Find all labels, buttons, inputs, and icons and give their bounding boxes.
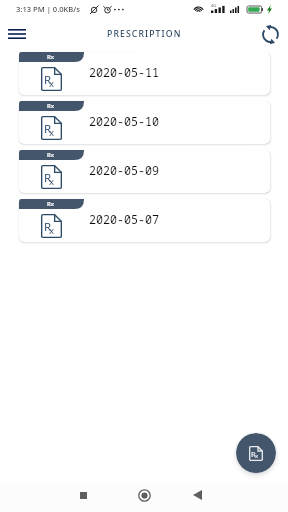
staticText: 2020-05-07 (89, 211, 160, 227)
button[interactable]: Menu (4, 21, 30, 47)
staticText: R (251, 449, 256, 459)
button[interactable]: Rx (19, 52, 84, 62)
staticText: x (49, 224, 55, 237)
staticText: Rx (47, 102, 55, 110)
button[interactable]: Recents (71, 483, 95, 507)
staticText: 2020-05-11 (89, 64, 160, 80)
staticText: Rx (47, 53, 55, 61)
staticText: Rx (47, 200, 55, 208)
button[interactable]: Back (185, 483, 209, 507)
staticText: 2020-05-09 (89, 162, 160, 178)
staticText: R (44, 170, 52, 186)
staticText: R (44, 72, 52, 88)
button[interactable]: Rx (19, 199, 84, 209)
button[interactable]: R (19, 150, 270, 193)
staticText: R (44, 219, 52, 235)
button[interactable]: R (19, 199, 270, 242)
button[interactable]: Home (132, 483, 156, 507)
staticText: x (49, 126, 55, 139)
staticText: x (49, 175, 55, 188)
button[interactable]: R (19, 52, 270, 95)
button[interactable]: Refresh (257, 21, 283, 47)
staticText: 4G (211, 3, 217, 8)
staticText: 2020-05-10 (89, 113, 160, 129)
button[interactable]: New prescription (236, 433, 276, 473)
button[interactable]: Rx (19, 150, 84, 160)
staticText: R (44, 121, 52, 137)
staticText: PRESCRIPTION (107, 28, 182, 40)
staticText: 3:13 PM | 0.0KB/s (16, 4, 80, 14)
staticText: x (255, 452, 259, 460)
staticText: Rx (47, 151, 55, 159)
staticText: x (49, 77, 55, 90)
button[interactable]: Rx (19, 101, 84, 111)
button[interactable]: R (19, 101, 270, 144)
